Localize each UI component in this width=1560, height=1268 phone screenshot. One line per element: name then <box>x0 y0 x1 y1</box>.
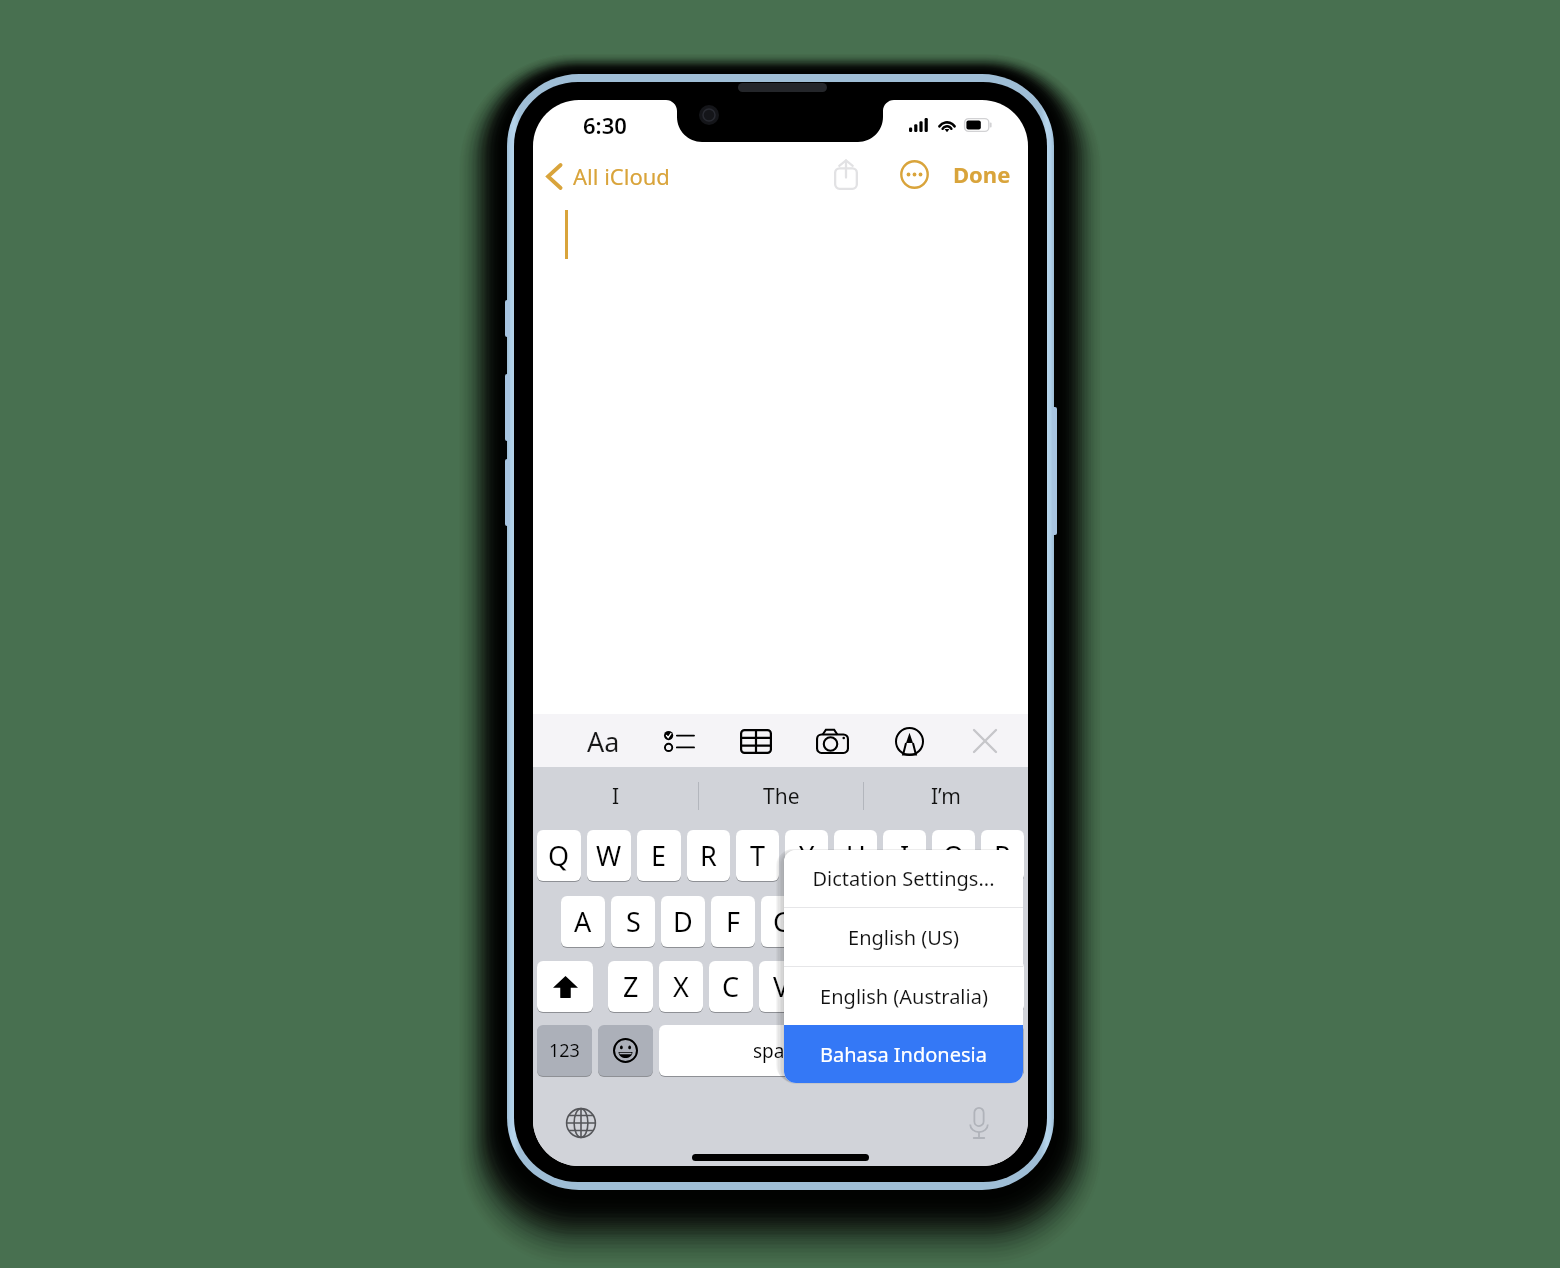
staticText: 6:30 <box>583 110 627 140</box>
staticText: X <box>673 968 689 1005</box>
staticText: Y <box>799 837 815 874</box>
button[interactable]: P <box>981 830 1024 881</box>
button[interactable]: Table <box>734 719 778 763</box>
staticText: I <box>612 782 620 811</box>
staticText: English (Australia) <box>820 983 988 1010</box>
staticText: Dictation Settings... <box>812 865 995 892</box>
staticText: C <box>722 968 740 1005</box>
button[interactable]: X <box>659 961 703 1012</box>
button[interactable]: V <box>759 961 803 1012</box>
staticText: return <box>937 1038 991 1063</box>
button[interactable]: return <box>904 1025 1024 1076</box>
button[interactable]: K <box>908 896 951 947</box>
button[interactable]: Change keyboard <box>559 1101 603 1145</box>
staticText: The <box>763 782 800 811</box>
staticText: R <box>700 837 717 874</box>
button[interactable]: Y <box>785 830 828 881</box>
button[interactable]: E <box>637 830 681 881</box>
staticText: K <box>921 903 938 940</box>
button[interactable]: M <box>909 961 953 1012</box>
staticText: S <box>626 903 641 940</box>
button[interactable]: Dictate <box>957 1101 1001 1145</box>
button[interactable]: Checklist <box>657 719 701 763</box>
staticText: All iCloud <box>573 161 670 191</box>
staticText: O <box>943 837 965 874</box>
button[interactable]: F <box>711 896 755 947</box>
button[interactable]: B <box>809 961 853 1012</box>
button[interactable]: Backspace <box>968 961 1024 1012</box>
staticText: P <box>994 837 1011 874</box>
button[interactable]: Done <box>950 159 1014 189</box>
button[interactable]: space <box>659 1025 898 1076</box>
staticText: Z <box>623 968 639 1005</box>
button[interactable]: D <box>661 896 705 947</box>
button[interactable]: The <box>699 771 863 821</box>
button[interactable]: R <box>687 830 730 881</box>
staticText: I’m <box>931 782 961 811</box>
staticText: L <box>971 903 986 940</box>
button[interactable]: Shift <box>537 961 593 1012</box>
button[interactable]: L <box>957 896 1000 947</box>
staticText: 123 <box>549 1038 580 1063</box>
button[interactable]: N <box>859 961 903 1012</box>
staticText: V <box>773 968 790 1005</box>
staticText: space <box>753 1038 805 1064</box>
button[interactable]: I <box>533 771 698 821</box>
staticText: B <box>822 968 840 1005</box>
button[interactable]: A <box>561 896 605 947</box>
button[interactable]: S <box>611 896 655 947</box>
button[interactable]: Aa <box>581 719 625 763</box>
staticText: J <box>877 903 885 940</box>
button[interactable]: Z <box>608 961 653 1012</box>
staticText: D <box>673 903 693 940</box>
staticText: English (US) <box>848 924 959 951</box>
staticText: Bahasa Indonesia <box>820 1041 987 1068</box>
button[interactable]: J <box>859 896 902 947</box>
button[interactable]: Camera <box>810 719 854 763</box>
button[interactable]: English (US) <box>784 908 1023 966</box>
staticText: G <box>773 903 793 940</box>
staticText: T <box>750 837 766 874</box>
button[interactable]: C <box>709 961 753 1012</box>
staticText: F <box>726 903 741 940</box>
button[interactable]: More options <box>894 154 934 194</box>
button[interactable]: I <box>883 830 926 881</box>
button[interactable]: U <box>834 830 877 881</box>
button[interactable]: Share <box>825 154 867 194</box>
button[interactable]: Emoji <box>598 1025 653 1076</box>
staticText: U <box>846 837 866 874</box>
button[interactable]: Close <box>963 719 1007 763</box>
staticText: E <box>651 837 667 874</box>
staticText: I <box>900 837 910 874</box>
staticText: N <box>871 968 892 1005</box>
staticText: Done <box>953 159 1011 189</box>
staticText: M <box>919 968 944 1005</box>
button[interactable]: H <box>810 896 853 947</box>
button[interactable]: O <box>932 830 975 881</box>
button[interactable]: All iCloud <box>546 156 670 196</box>
button[interactable]: Markup <box>887 719 931 763</box>
button[interactable]: G <box>761 896 804 947</box>
button[interactable]: I’m <box>864 771 1028 821</box>
staticText: W <box>596 837 622 874</box>
staticText: H <box>821 903 842 940</box>
button[interactable]: 123 <box>537 1025 592 1076</box>
button[interactable]: English (Australia) <box>784 967 1023 1025</box>
staticText: Aa <box>587 723 620 760</box>
staticText: A <box>574 903 592 940</box>
button[interactable]: Dictation Settings... <box>784 850 1023 907</box>
button[interactable]: T <box>736 830 779 881</box>
button[interactable]: Bahasa Indonesia <box>784 1025 1023 1083</box>
button[interactable]: Q <box>537 830 581 881</box>
staticText: Q <box>548 837 570 874</box>
button[interactable]: W <box>587 830 631 881</box>
